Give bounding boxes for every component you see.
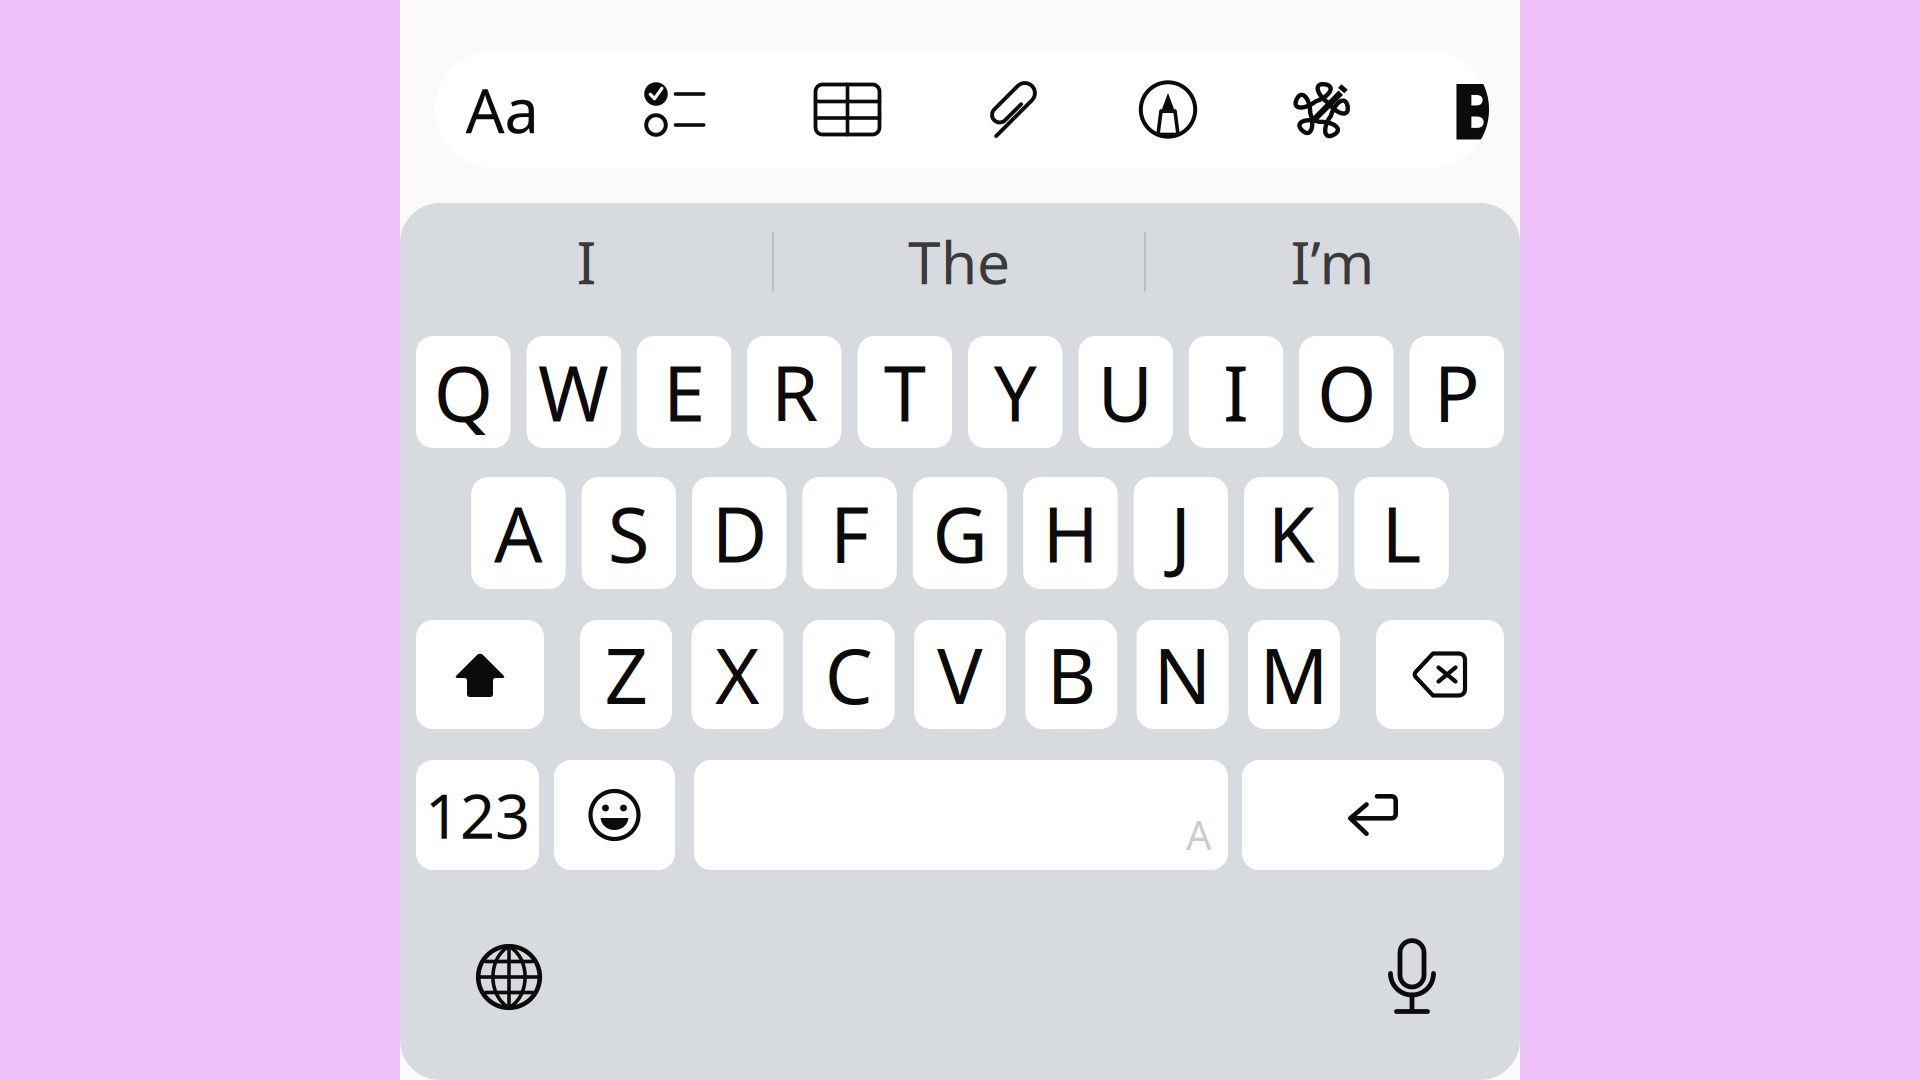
button[interactable]: Bold xyxy=(1450,51,1490,168)
button[interactable]: R xyxy=(747,336,842,448)
button[interactable]: M xyxy=(1248,620,1340,729)
button[interactable]: X xyxy=(691,620,783,729)
button[interactable]: Attach xyxy=(986,51,1040,168)
staticText: I xyxy=(576,222,596,300)
button[interactable]: Markup xyxy=(1140,51,1195,168)
staticText: J xyxy=(1170,482,1191,583)
staticText: R xyxy=(771,341,818,442)
staticText: A xyxy=(494,482,543,583)
button[interactable]: O xyxy=(1299,336,1394,448)
button[interactable]: Checklist xyxy=(643,51,705,168)
button[interactable]: F xyxy=(802,477,897,589)
button[interactable]: Writing Tools xyxy=(1289,51,1352,168)
button[interactable]: H xyxy=(1023,477,1118,589)
staticText: B xyxy=(1450,58,1502,161)
button[interactable]: D xyxy=(692,477,786,589)
staticText: K xyxy=(1268,482,1315,583)
button[interactable]: A xyxy=(471,477,566,589)
button[interactable]: Q xyxy=(416,336,510,448)
staticText: G xyxy=(932,482,987,583)
button[interactable]: Text format xyxy=(469,51,534,168)
button[interactable]: K xyxy=(1244,477,1338,589)
staticText: P xyxy=(1434,341,1480,442)
button[interactable]: Z xyxy=(580,620,672,729)
button[interactable]: J xyxy=(1134,477,1228,589)
button[interactable]: S xyxy=(582,477,676,589)
staticText: S xyxy=(608,482,650,583)
staticText: M xyxy=(1259,624,1328,725)
button[interactable]: I xyxy=(1189,336,1283,448)
staticText: U xyxy=(1098,341,1154,442)
button[interactable]: B xyxy=(1025,620,1117,729)
staticText: C xyxy=(825,624,873,725)
staticText: Aa xyxy=(465,69,538,150)
button[interactable]: Delete xyxy=(1376,620,1504,729)
staticText: V xyxy=(937,624,983,725)
button[interactable]: Space xyxy=(694,760,1228,870)
button[interactable]: Next keyboard xyxy=(465,933,553,1021)
button[interactable]: Return xyxy=(1242,760,1504,870)
staticText: N xyxy=(1154,624,1212,725)
button[interactable]: E xyxy=(637,336,731,448)
staticText: H xyxy=(1042,482,1098,583)
button[interactable]: The xyxy=(773,203,1145,320)
staticText: 123 xyxy=(425,774,530,856)
button[interactable]: G xyxy=(913,477,1007,589)
staticText: Q xyxy=(434,341,493,442)
button[interactable]: Dictate xyxy=(1368,933,1456,1021)
button[interactable]: C xyxy=(803,620,895,729)
button[interactable]: I’m xyxy=(1145,203,1520,320)
staticText: B xyxy=(1047,624,1096,725)
staticText: L xyxy=(1382,482,1422,583)
button[interactable]: U xyxy=(1078,336,1173,448)
button[interactable]: Shift xyxy=(416,620,544,729)
staticText: D xyxy=(712,482,767,583)
button[interactable]: Y xyxy=(968,336,1062,448)
staticText: O xyxy=(1317,341,1376,442)
staticText: F xyxy=(830,482,869,583)
button[interactable]: N xyxy=(1137,620,1229,729)
button[interactable]: Emoji xyxy=(554,760,675,870)
button[interactable]: T xyxy=(858,336,952,448)
staticText: Z xyxy=(605,624,648,725)
button[interactable]: L xyxy=(1354,477,1449,589)
staticText: X xyxy=(715,624,760,725)
button[interactable]: Table xyxy=(815,51,879,168)
staticText: I’m xyxy=(1290,222,1374,300)
staticText: Y xyxy=(994,341,1037,442)
button[interactable]: W xyxy=(526,336,621,448)
button[interactable]: V xyxy=(914,620,1006,729)
staticText: W xyxy=(538,341,609,442)
staticText: T xyxy=(884,341,926,442)
staticText: E xyxy=(663,341,705,442)
button[interactable]: P xyxy=(1410,336,1504,448)
staticText: The xyxy=(908,222,1010,300)
staticText: A xyxy=(1186,808,1212,861)
button[interactable]: I xyxy=(400,203,773,320)
button[interactable]: 123 xyxy=(416,760,539,870)
staticText: I xyxy=(1223,341,1249,442)
